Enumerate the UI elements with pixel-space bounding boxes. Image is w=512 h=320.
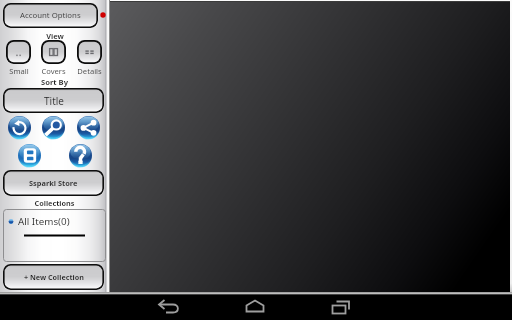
- staticText: All Items(0): [18, 215, 70, 228]
- staticText: Account Options: [20, 10, 81, 21]
- button[interactable]: Help: [69, 144, 92, 167]
- staticText: Title: [44, 94, 64, 108]
- button[interactable]: Recent apps: [321, 297, 359, 317]
- button[interactable]: Ssparkl Store: [3, 170, 104, 196]
- button[interactable]: Search: [42, 116, 65, 139]
- button[interactable]: Home: [236, 297, 274, 317]
- staticText: Collections: [34, 198, 75, 208]
- staticText: Sort By: [41, 77, 68, 87]
- staticText: Small: [9, 66, 29, 76]
- staticText: Covers: [41, 66, 66, 76]
- button[interactable]: Details: [77, 40, 102, 64]
- button[interactable]: Small: [6, 40, 31, 64]
- button[interactable]: Back: [150, 297, 188, 317]
- button[interactable]: Account Options: [3, 3, 98, 28]
- button[interactable]: + New Collection: [3, 264, 104, 290]
- staticText: Details: [77, 66, 102, 76]
- button[interactable]: Bookmarks: [18, 144, 41, 167]
- staticText: + New Collection: [24, 272, 84, 282]
- button[interactable]: Refresh: [8, 116, 31, 139]
- button[interactable]: Share: [77, 116, 100, 139]
- staticText: Ssparkl Store: [29, 178, 78, 188]
- button[interactable]: Covers: [41, 40, 66, 64]
- staticText: View: [46, 31, 64, 41]
- button[interactable]: Title: [3, 88, 104, 113]
- button[interactable]: All Items(0): [6, 213, 94, 230]
